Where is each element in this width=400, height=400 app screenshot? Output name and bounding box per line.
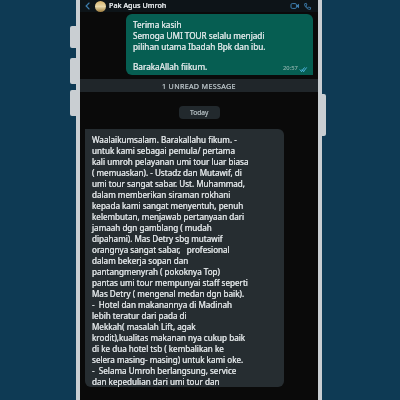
other: Volume down [70, 90, 78, 116]
staticText: Pak Agus Umroh [109, 0, 167, 10]
button[interactable]: Terima kasih Semoga UMI TOUR selalu menj… [126, 14, 313, 75]
staticText: BarakaAllah fiikum. [133, 61, 208, 72]
other: Power [318, 94, 326, 136]
other: Silent switch [70, 26, 78, 48]
other: Volume up [70, 58, 78, 84]
button[interactable]: Video call [288, 0, 301, 12]
button[interactable]: Waalaikumsalam. Barakallahu fikum. - unt… [85, 129, 284, 387]
staticText: Terima kasih Semoga UMI TOUR selalu menj… [133, 19, 266, 52]
staticText: 1 UNREAD MESSAGE [162, 81, 236, 91]
staticText: Today [190, 108, 209, 117]
staticText: 20:57 [283, 64, 298, 72]
button[interactable]: Pak Agus Umroh [109, 0, 288, 12]
staticText: Waalaikumsalam. Barakallahu fikum. - unt… [92, 134, 249, 387]
button[interactable]: Contact photo [95, 1, 106, 12]
button[interactable]: Voice call [301, 0, 314, 12]
button[interactable]: Back [82, 0, 94, 12]
